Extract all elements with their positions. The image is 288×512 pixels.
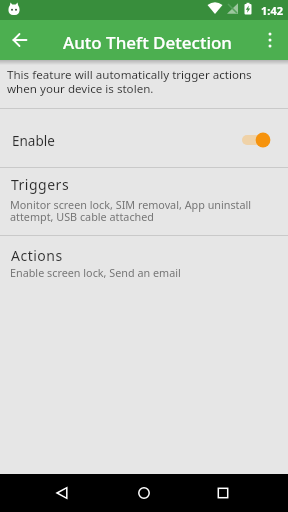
staticText: Enable screen lock, Send an email bbox=[10, 265, 181, 280]
staticText: Monitor screen lock, SIM removal, App un… bbox=[10, 197, 252, 224]
button[interactable] bbox=[252, 20, 288, 60]
staticText: Triggers bbox=[11, 175, 70, 194]
staticText: This feature will automatically trigger … bbox=[7, 67, 252, 96]
button[interactable] bbox=[199, 474, 247, 512]
button[interactable] bbox=[0, 20, 40, 60]
button[interactable] bbox=[120, 474, 168, 512]
staticText: Auto Theft Detection bbox=[63, 31, 233, 54]
staticText: Actions bbox=[11, 246, 63, 265]
button[interactable] bbox=[0, 168, 288, 235]
button[interactable] bbox=[0, 236, 288, 296]
button[interactable] bbox=[38, 474, 86, 512]
staticText: Enable bbox=[12, 132, 55, 150]
staticText: 1:42 bbox=[261, 3, 283, 18]
button[interactable] bbox=[0, 108, 288, 167]
